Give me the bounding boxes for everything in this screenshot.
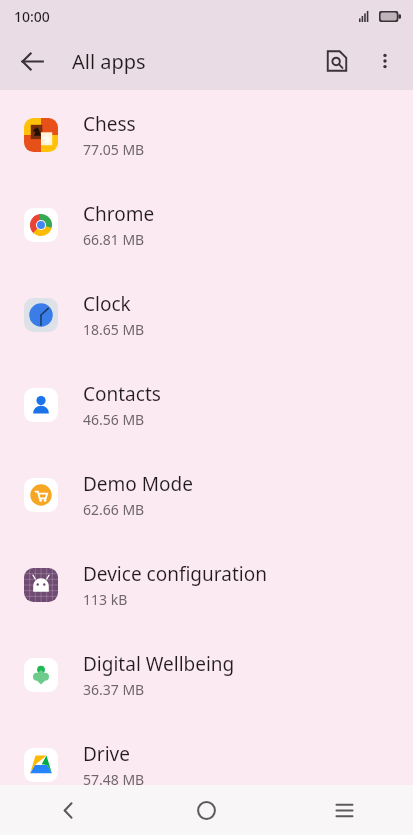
staticText: 66.81 MB [83, 230, 145, 249]
staticText: 113 kB [83, 590, 128, 609]
staticText: 36.37 MB [83, 680, 145, 699]
staticText: 62.66 MB [83, 500, 145, 519]
staticText: 77.05 MB [83, 140, 145, 159]
staticText: All apps [72, 48, 146, 75]
button[interactable]: Home [137, 785, 275, 835]
button[interactable]: Demo Mode [0, 450, 413, 540]
staticText: 46.56 MB [83, 410, 145, 429]
button[interactable]: Digital Wellbeing [0, 630, 413, 720]
staticText: Chrome [83, 201, 155, 227]
staticText: Digital Wellbeing [83, 651, 235, 677]
staticText: Clock [83, 291, 131, 317]
staticText: Chess [83, 111, 136, 137]
button[interactable]: Contacts [0, 360, 413, 450]
button[interactable]: More options [361, 37, 409, 85]
staticText: Contacts [83, 381, 161, 407]
button[interactable]: Back [0, 785, 137, 835]
staticText: 18.65 MB [83, 320, 145, 339]
button[interactable]: Drive [0, 720, 413, 810]
button[interactable]: Clock [0, 270, 413, 360]
button[interactable]: Device configuration [0, 540, 413, 630]
button[interactable]: Back [8, 37, 56, 85]
button[interactable]: Search apps [313, 37, 361, 85]
button[interactable]: Chrome [0, 180, 413, 270]
staticText: Device configuration [83, 561, 267, 587]
staticText: Demo Mode [83, 471, 193, 497]
button[interactable]: Chess [0, 90, 413, 180]
staticText: Drive [83, 741, 130, 767]
button[interactable]: Recent apps [275, 785, 413, 835]
staticText: 57.48 MB [83, 770, 145, 789]
staticText: 10:00 [14, 7, 50, 26]
